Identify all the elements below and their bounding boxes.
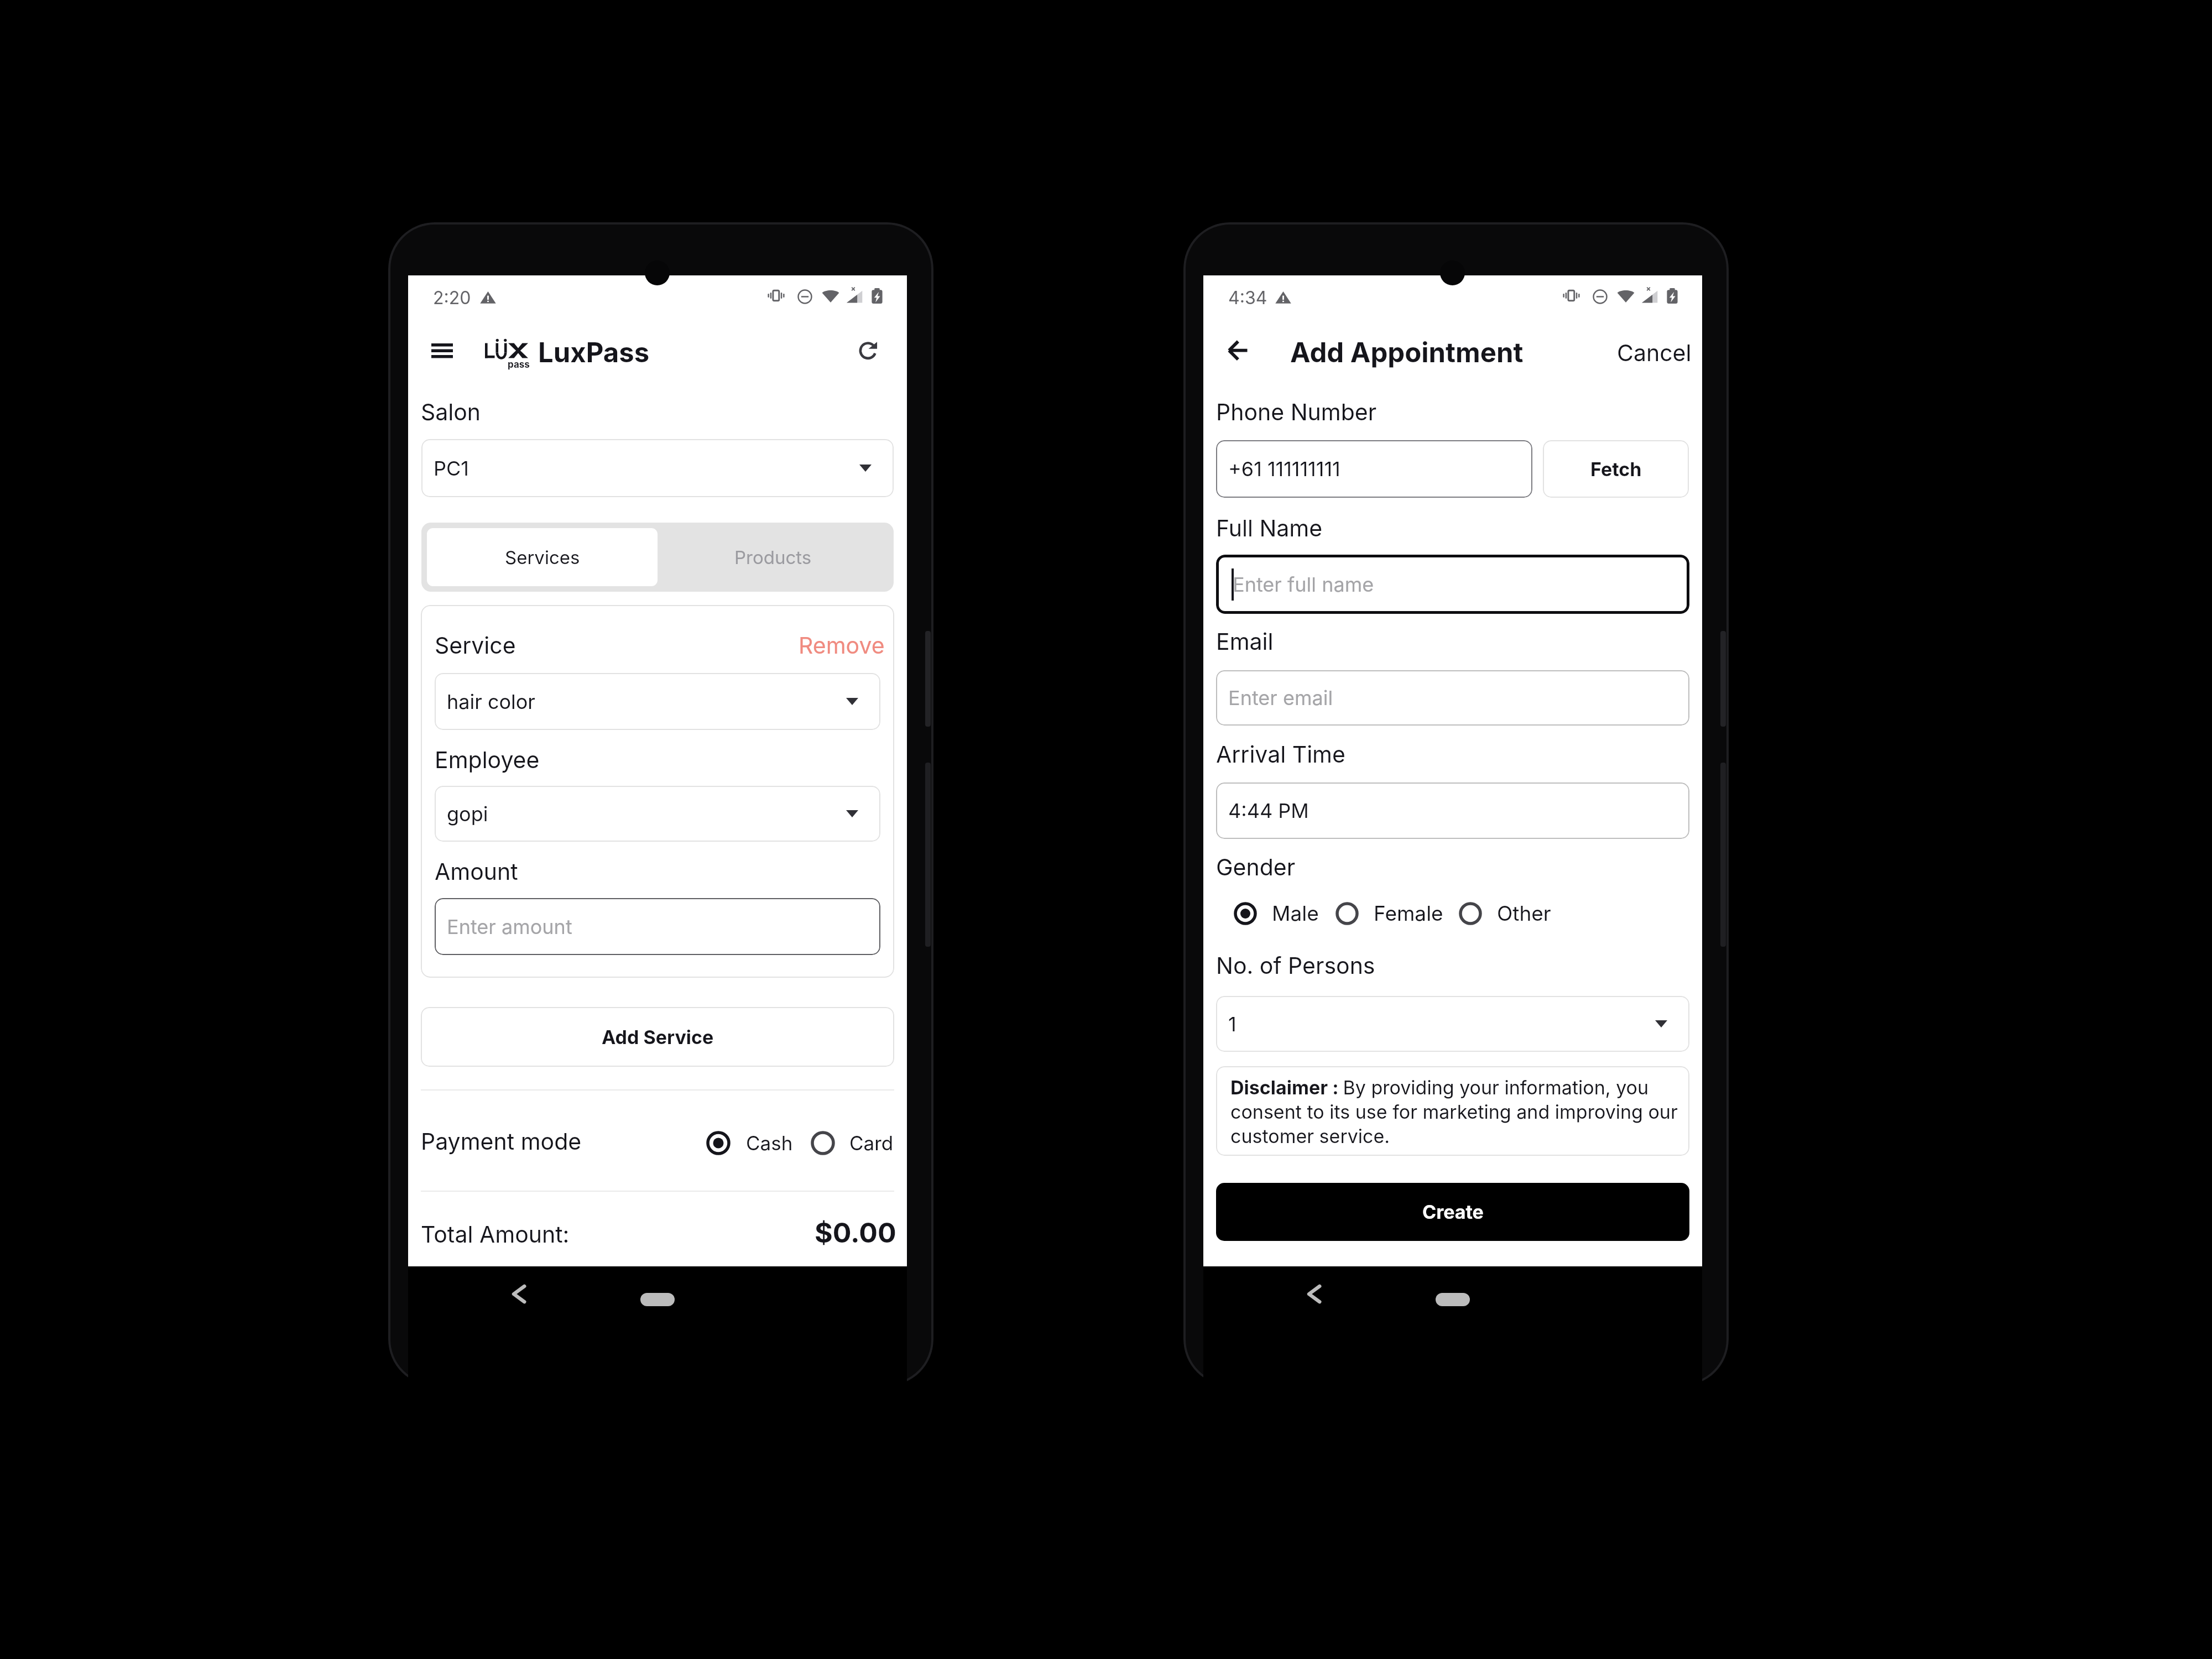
button[interactable]: hair color <box>435 673 880 730</box>
button[interactable]: Enter full name <box>1216 555 1689 614</box>
other: Back <box>1305 1285 1323 1303</box>
staticText: 4:34 <box>1228 287 1267 309</box>
staticText: Other <box>1497 901 1551 926</box>
staticText: Male <box>1272 901 1319 926</box>
other: Back <box>510 1285 528 1303</box>
staticText: PC1 <box>434 456 469 481</box>
button[interactable]: PC1 <box>421 439 894 497</box>
staticText: Products <box>734 546 812 568</box>
staticText: Total Amount: <box>421 1220 570 1248</box>
staticText: Employee <box>435 746 540 774</box>
button[interactable]: Card <box>811 1121 894 1165</box>
staticText: Email <box>1216 628 1274 655</box>
staticText: Enter amount <box>447 915 572 939</box>
button[interactable]: 4:44 PM <box>1216 782 1689 839</box>
staticText: Amount <box>435 858 518 885</box>
button[interactable]: Services <box>427 528 658 586</box>
staticText: Remove <box>799 632 885 659</box>
staticText: 1 <box>1228 1012 1237 1036</box>
staticText: Card <box>849 1131 894 1155</box>
staticText: Full Name <box>1216 514 1323 542</box>
button[interactable]: Navigate back <box>1215 328 1260 372</box>
button[interactable]: Male <box>1234 891 1319 936</box>
staticText: +61 111111111 <box>1228 457 1340 481</box>
staticText: No. of Persons <box>1216 952 1375 979</box>
staticText: Payment mode <box>421 1128 582 1155</box>
staticText: Enter full name <box>1233 572 1374 597</box>
staticText: LuxPass <box>538 336 650 369</box>
button[interactable]: gopi <box>435 786 880 842</box>
button[interactable]: Female <box>1335 891 1443 936</box>
button[interactable]: 1 <box>1216 996 1689 1052</box>
staticText: Create <box>1422 1201 1484 1223</box>
button[interactable]: Remove <box>790 623 894 668</box>
staticText: pass <box>508 359 530 371</box>
staticText: hair color <box>447 690 535 714</box>
staticText: Cancel <box>1617 339 1692 367</box>
staticText: Disclaimer : By providing your informati… <box>1230 1076 1685 1147</box>
staticText: Enter email <box>1228 686 1333 710</box>
staticText: Fetch <box>1590 458 1642 481</box>
button[interactable]: Other <box>1459 891 1551 936</box>
button[interactable]: Open navigation menu <box>417 330 467 372</box>
button[interactable]: Fetch <box>1543 440 1689 498</box>
staticText: Add Service <box>602 1026 714 1048</box>
staticText: gopi <box>447 802 488 826</box>
staticText: Cash <box>746 1131 793 1155</box>
button[interactable]: Add Service <box>421 1007 894 1067</box>
staticText: Female <box>1374 901 1443 926</box>
staticText: Salon <box>421 398 481 426</box>
staticText: Services <box>505 546 580 568</box>
button[interactable]: Cancel <box>1607 329 1702 377</box>
staticText: Arrival Time <box>1216 740 1345 768</box>
staticText: Phone Number <box>1216 398 1377 426</box>
button[interactable]: Enter amount <box>435 898 880 955</box>
button[interactable]: Products <box>658 528 888 586</box>
staticText: Service <box>435 632 516 659</box>
staticText: 2:20 <box>433 287 471 309</box>
button[interactable]: Refresh <box>852 333 885 366</box>
staticText: Add Appointment <box>1290 336 1524 369</box>
staticText: 4:44 PM <box>1228 799 1309 823</box>
button[interactable]: Cash <box>706 1121 793 1165</box>
button[interactable]: Create <box>1216 1183 1689 1241</box>
staticText: $0.00 <box>815 1216 896 1249</box>
button[interactable]: Enter email <box>1216 670 1689 726</box>
button[interactable]: +61 111111111 <box>1216 440 1532 498</box>
staticText: Gender <box>1216 853 1296 881</box>
